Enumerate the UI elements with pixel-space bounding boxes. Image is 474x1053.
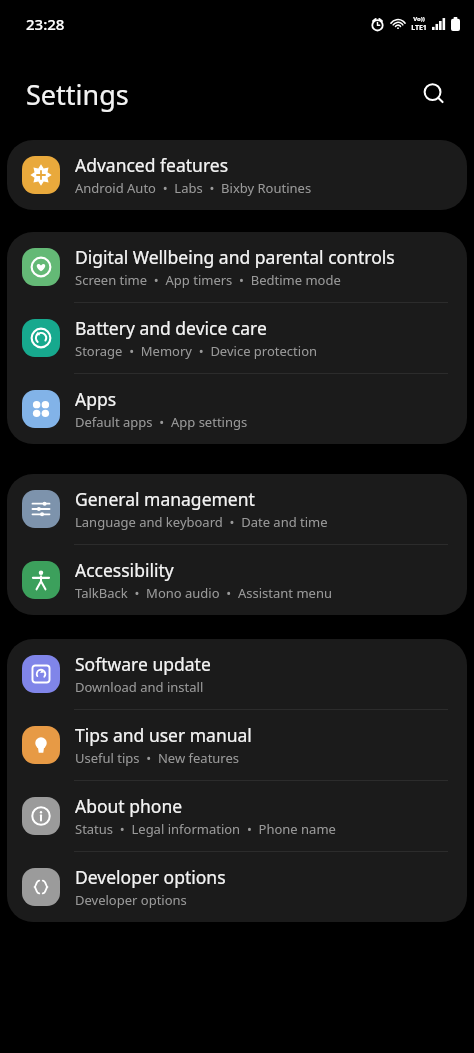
staticText: Useful tips • New features — [75, 749, 240, 767]
button[interactable]: Software update — [7, 639, 467, 709]
staticText: Apps — [75, 387, 117, 411]
button[interactable]: Digital Wellbeing and parental controls — [7, 232, 467, 302]
button[interactable]: General management — [7, 474, 467, 544]
staticText: TalkBack • Mono audio • Assistant menu — [75, 584, 332, 602]
staticText: Tips and user manual — [75, 723, 252, 747]
button[interactable]: About phone — [7, 781, 467, 851]
button[interactable]: Accessibility — [7, 545, 467, 615]
button[interactable]: Developer options — [7, 852, 467, 922]
button[interactable]: Tips and user manual — [7, 710, 467, 780]
button[interactable]: Apps — [7, 374, 467, 444]
staticText: LTE1 — [411, 23, 427, 33]
staticText: Screen time • App timers • Bedtime mode — [75, 271, 341, 289]
staticText: Developer options — [75, 891, 187, 909]
staticText: Language and keyboard • Date and time — [75, 513, 328, 531]
staticText: Digital Wellbeing and parental controls — [75, 245, 395, 269]
staticText: Vo)) — [413, 15, 425, 23]
staticText: Status • Legal information • Phone name — [75, 820, 336, 838]
staticText: General management — [75, 487, 255, 511]
staticText: Accessibility — [75, 558, 174, 582]
staticText: Battery and device care — [75, 316, 267, 340]
button[interactable]: Advanced features — [7, 140, 467, 210]
staticText: Developer options — [75, 865, 226, 889]
staticText: Storage • Memory • Device protection — [75, 342, 318, 360]
staticText: Advanced features — [75, 153, 229, 177]
staticText: Download and install — [75, 678, 204, 696]
staticText: About phone — [75, 794, 183, 818]
staticText: Settings — [26, 76, 129, 113]
staticText: 23:28 — [26, 14, 65, 34]
staticText: Android Auto • Labs • Bixby Routines — [75, 179, 312, 197]
button[interactable]: Battery and device care — [7, 303, 467, 373]
button[interactable]: Search settings — [414, 74, 454, 114]
staticText: Default apps • App settings — [75, 413, 248, 431]
staticText: Software update — [75, 652, 211, 676]
